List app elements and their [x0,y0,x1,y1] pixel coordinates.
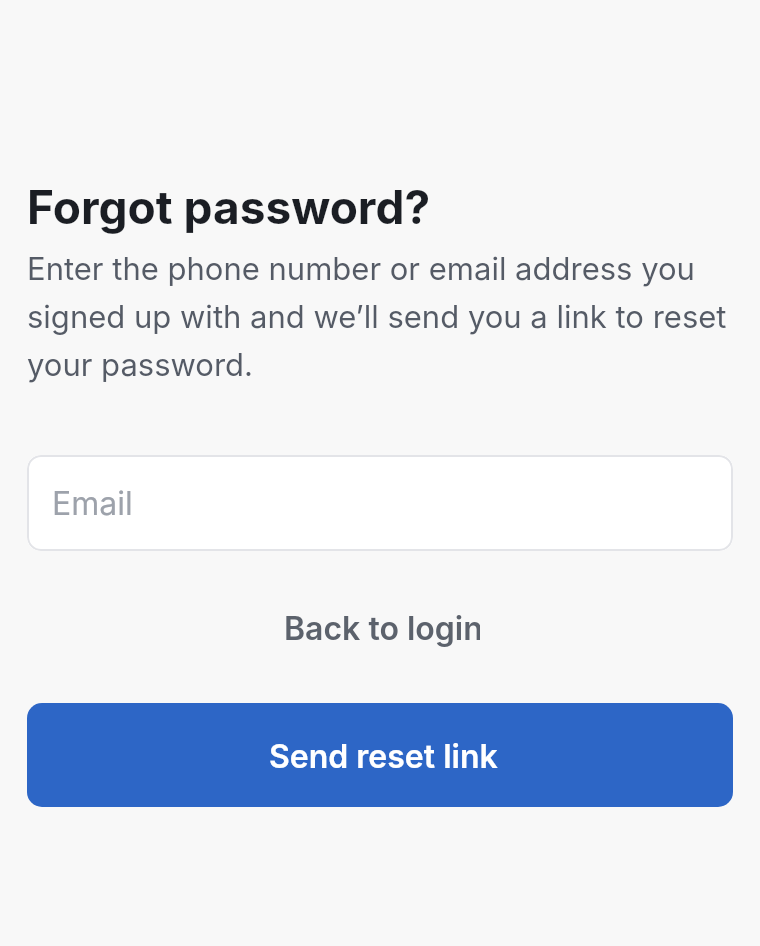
staticText: Forgot password? [27,179,431,235]
button[interactable]: Send reset link [27,703,733,807]
staticText: Back to login [284,609,480,648]
staticText: Send reset link [269,737,498,776]
button[interactable]: Back to login [281,607,480,648]
button[interactable]: Email [27,455,733,551]
staticText: Email [52,484,133,523]
staticText: Enter the phone number or email address … [27,250,727,384]
